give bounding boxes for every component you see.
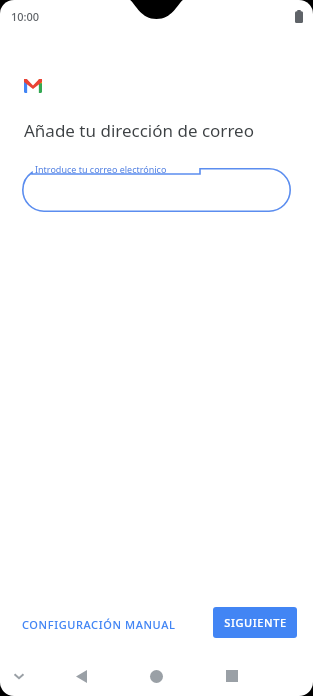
button[interactable]: Recent apps (217, 661, 247, 691)
button[interactable]: CONFIGURACIÓN MANUAL (16, 608, 170, 640)
staticText: SIGUIENTE (224, 615, 287, 630)
button[interactable] (22, 168, 291, 212)
button[interactable]: SIGUIENTE (213, 607, 297, 638)
staticText: CONFIGURACIÓN MANUAL (22, 617, 176, 632)
button[interactable]: Home (141, 661, 171, 691)
button[interactable]: Hide keyboard (6, 663, 32, 689)
staticText: Añade tu dirección de correo (24, 119, 254, 142)
staticText: 10:00 (11, 9, 40, 24)
staticText: Introduce tu correo electrónico (35, 163, 167, 175)
button[interactable]: Back (66, 661, 96, 691)
